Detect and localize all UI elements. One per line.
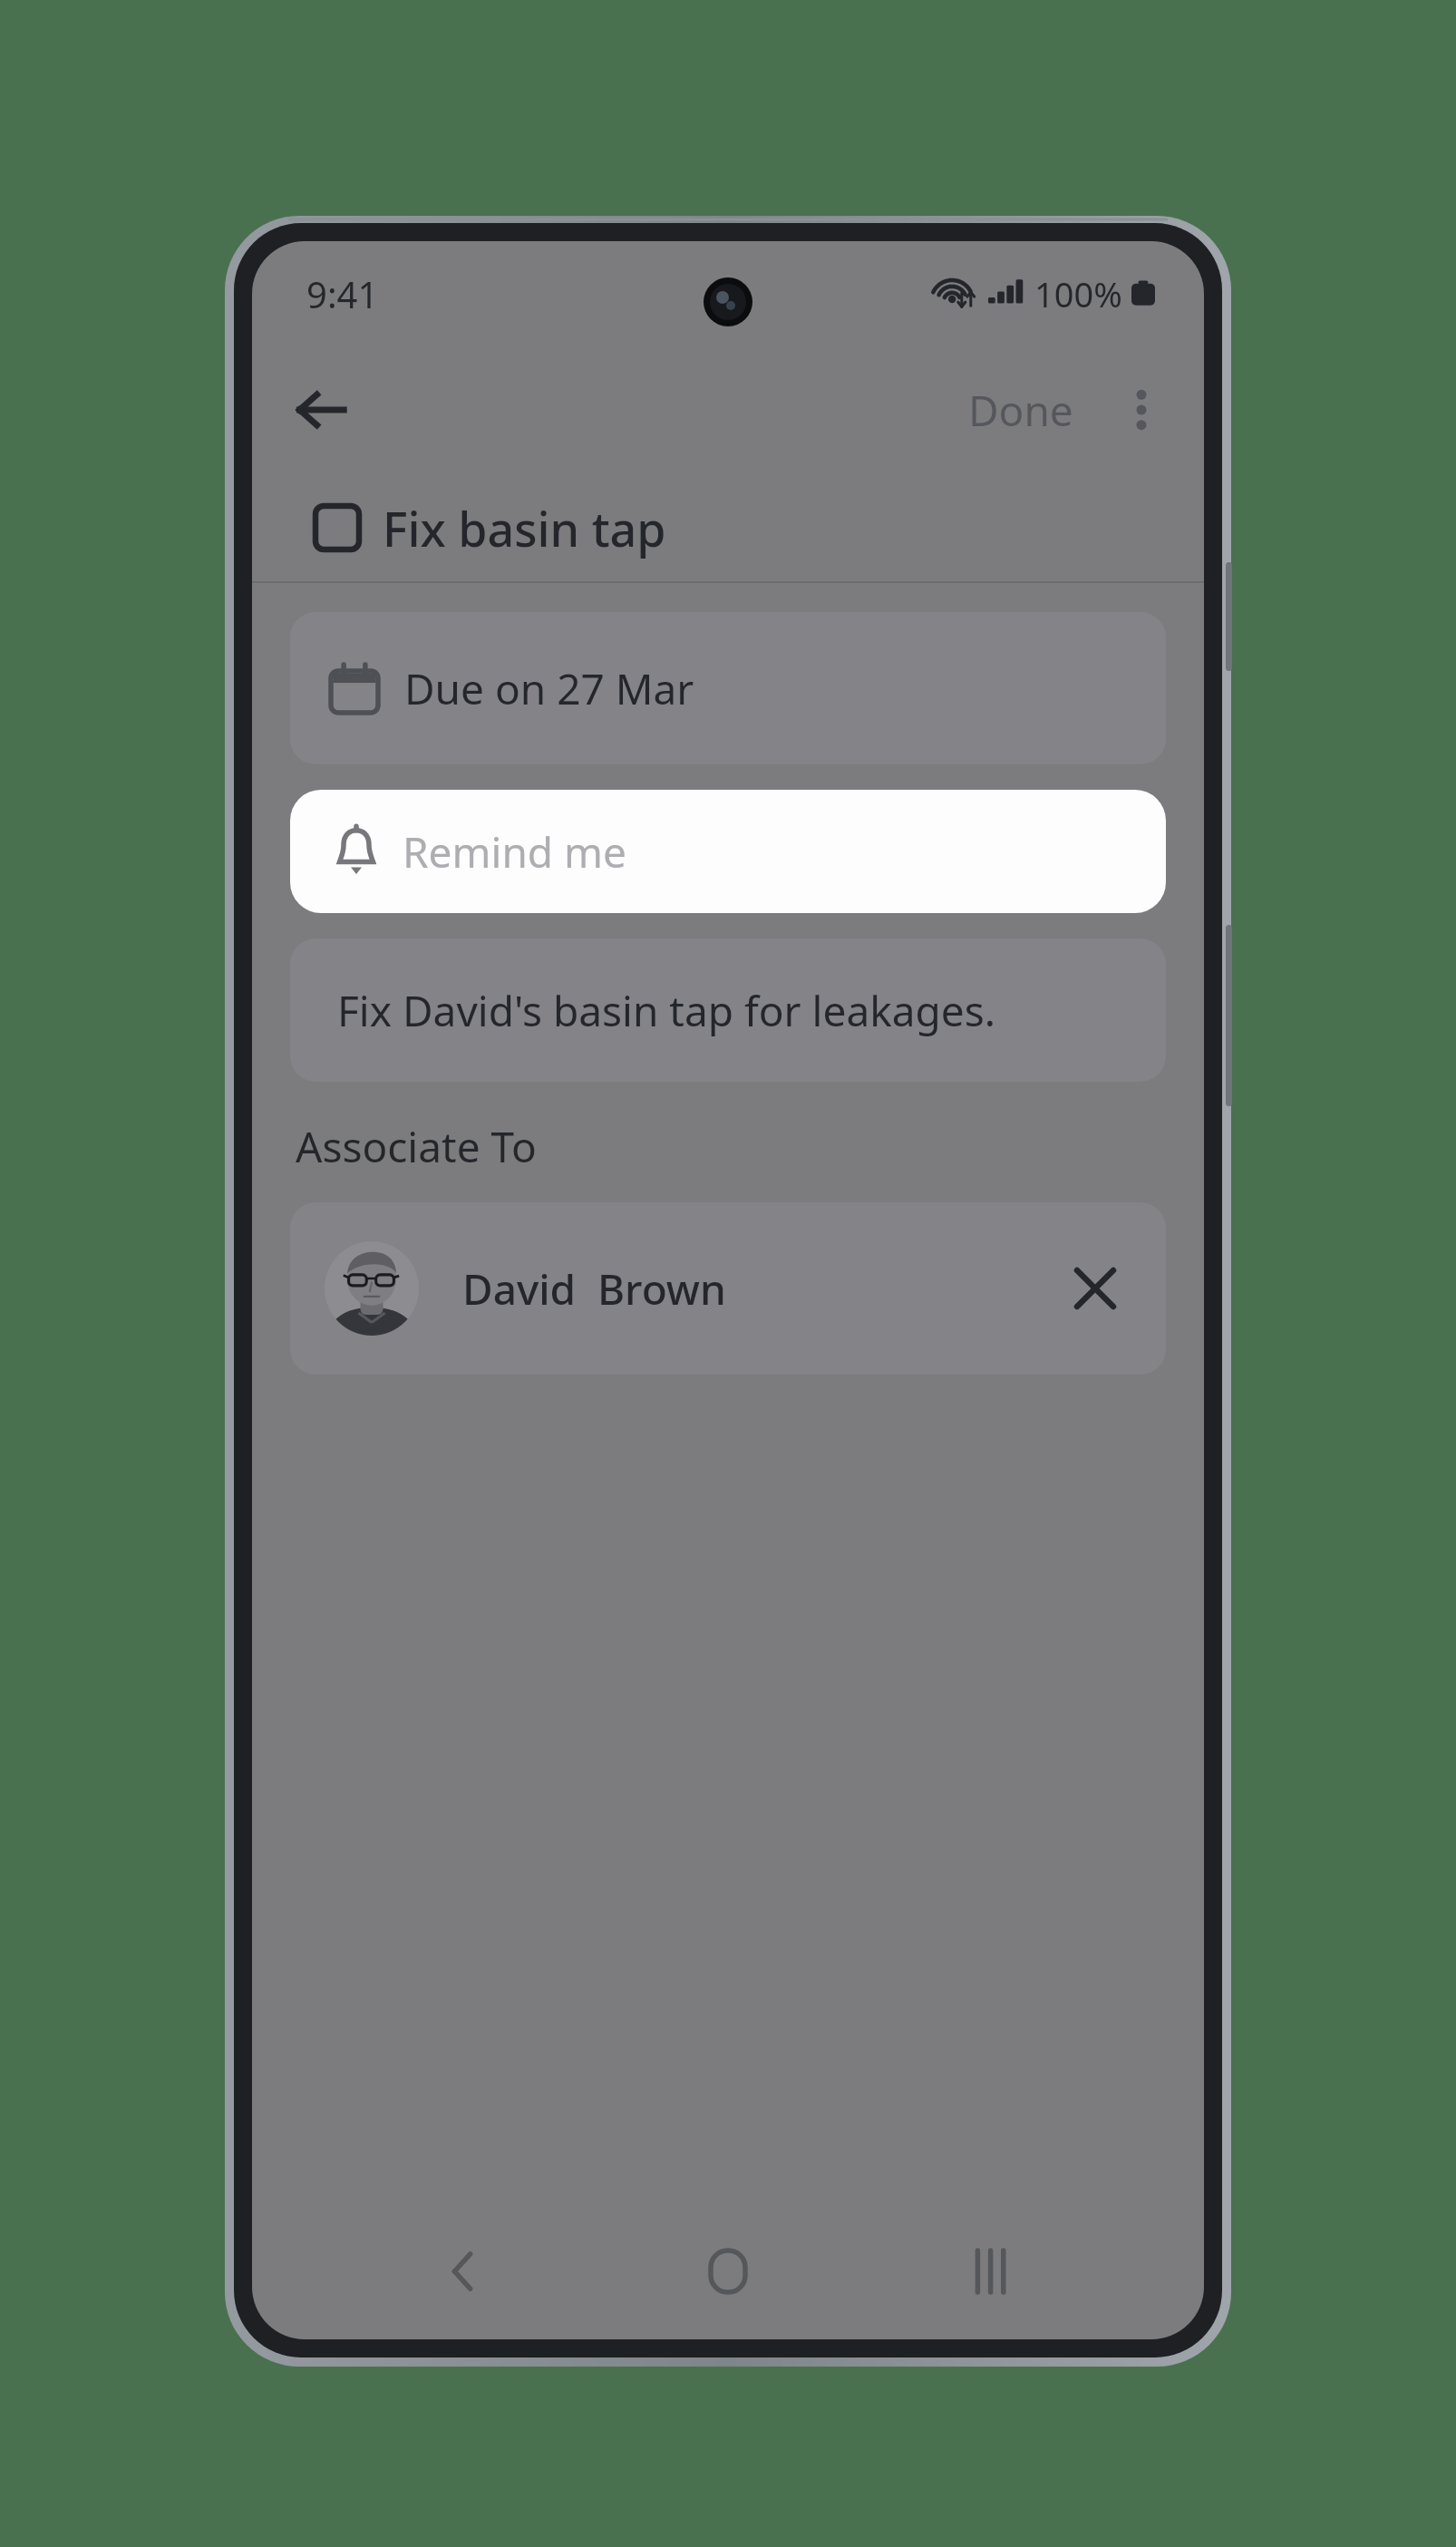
staticText: Associate To [296,1118,537,1175]
staticText: Done [968,382,1073,439]
button[interactable]: Back [277,366,364,453]
button[interactable]: Done [954,373,1088,448]
button[interactable]: Recent apps [939,2217,1048,2326]
button[interactable]: Remove David Brown [1055,1249,1135,1328]
button[interactable]: Home [674,2217,782,2326]
button[interactable]: Back [409,2217,518,2326]
staticText: Due on 27 Mar [404,660,694,717]
button[interactable]: Fix David's basin tap for leakages. [290,938,1166,1082]
button[interactable]: Remind me [290,790,1166,913]
staticText: Fix David's basin tap for leakages. [337,982,996,1039]
button[interactable]: Due on 27 Mar [290,612,1166,764]
staticText: Fix basin tap [383,496,666,560]
button[interactable]: David Brown [290,1202,1166,1375]
button[interactable]: More options [1101,369,1182,451]
staticText: 9:41 [306,269,379,318]
staticText: Remind me [403,823,627,880]
button[interactable]: Fix basin tap [252,474,1204,581]
staticText: 100% [1034,270,1122,317]
staticText: David Brown [462,1260,726,1317]
